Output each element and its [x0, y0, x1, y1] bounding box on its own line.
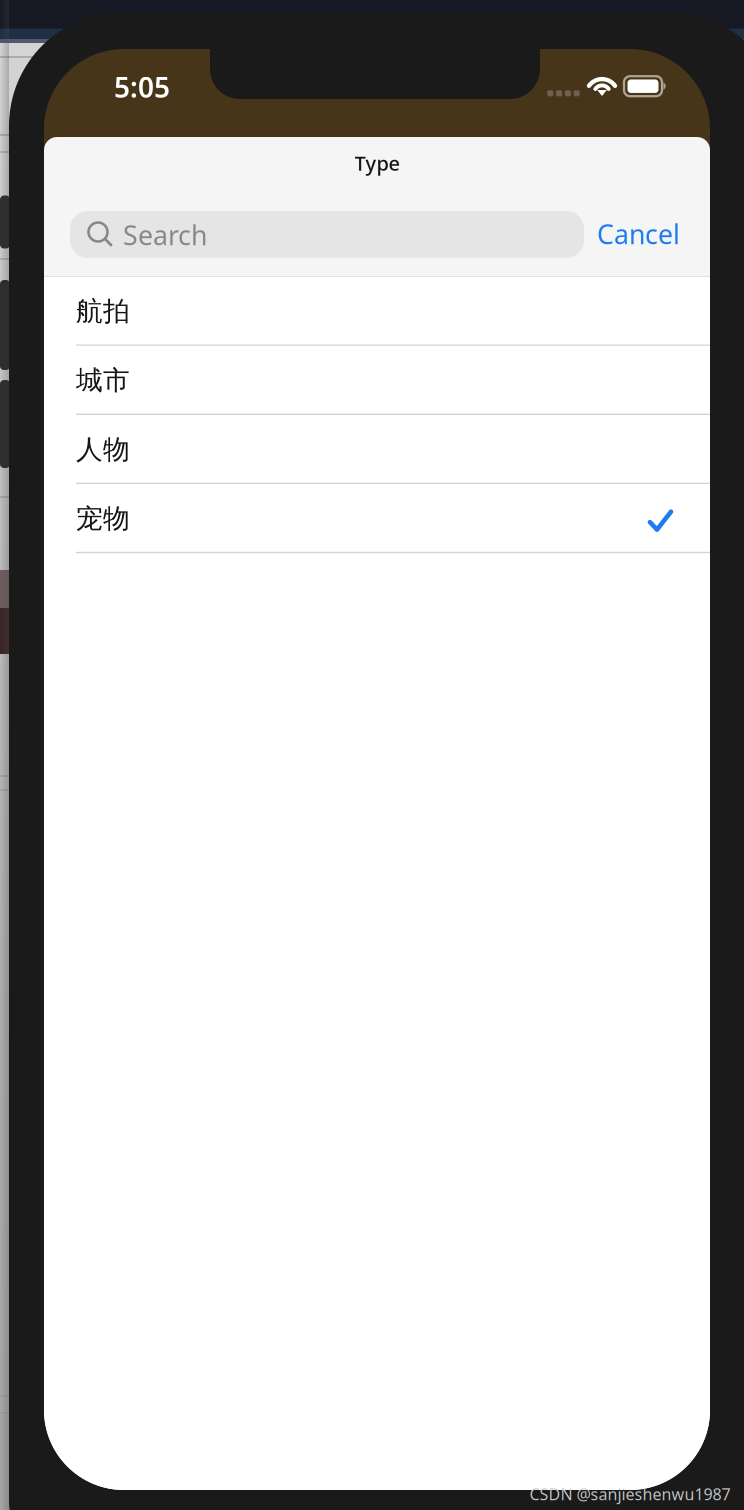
staticText: Cancel [597, 216, 680, 252]
staticText: 城市 [76, 364, 130, 397]
staticText: 宠物 [76, 502, 130, 535]
button[interactable]: 航拍 [44, 277, 710, 346]
staticText: 人物 [76, 433, 130, 466]
staticText: 5:05 [114, 68, 170, 106]
staticText: Type [354, 150, 399, 176]
button[interactable]: 人物 [44, 415, 710, 484]
button[interactable]: 宠物 [44, 484, 710, 553]
staticText: 航拍 [76, 295, 130, 328]
button[interactable]: 城市 [44, 346, 710, 415]
staticText: Search [123, 217, 207, 253]
staticText: CSDN @sanjieshenwu1987 [529, 1483, 730, 1505]
button[interactable]: Search [70, 211, 584, 258]
button[interactable]: Cancel [588, 208, 688, 260]
